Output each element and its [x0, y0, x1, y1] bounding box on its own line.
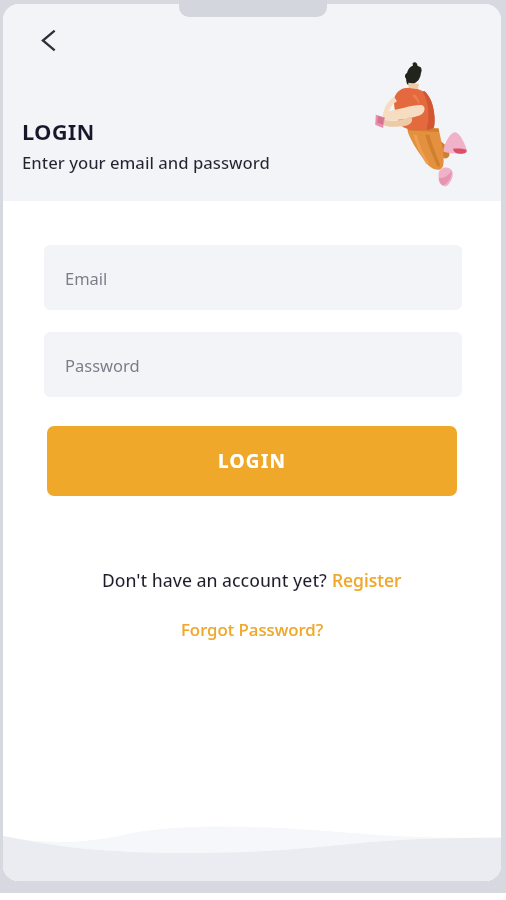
button[interactable]: Register: [332, 568, 402, 592]
staticText: Don't have an account yet?: [102, 568, 332, 592]
button[interactable]: Forgot Password?: [181, 618, 324, 641]
staticText: Enter your email and password: [22, 151, 270, 174]
button[interactable]: Email: [44, 245, 462, 310]
staticText: LOGIN: [22, 116, 95, 146]
staticText: Forgot Password?: [181, 618, 324, 641]
button[interactable]: LOGIN: [47, 426, 457, 496]
staticText: Password: [65, 354, 140, 376]
button[interactable]: Back: [27, 20, 67, 60]
staticText: Register: [332, 568, 402, 592]
button[interactable]: Password: [44, 332, 462, 397]
staticText: Email: [65, 267, 108, 289]
staticText: LOGIN: [218, 448, 287, 474]
